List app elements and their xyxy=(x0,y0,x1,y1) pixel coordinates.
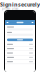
button[interactable] xyxy=(5,60,35,64)
button[interactable]: More xyxy=(29,20,33,24)
button[interactable]: Back xyxy=(6,20,10,24)
button[interactable] xyxy=(5,51,35,55)
button[interactable] xyxy=(5,42,35,47)
button[interactable] xyxy=(5,47,35,51)
button[interactable] xyxy=(5,55,35,60)
staticText: Everything in one simple, private place. xyxy=(2,3,38,11)
staticText: Sign in securely xyxy=(0,1,40,8)
button[interactable] xyxy=(5,37,35,42)
